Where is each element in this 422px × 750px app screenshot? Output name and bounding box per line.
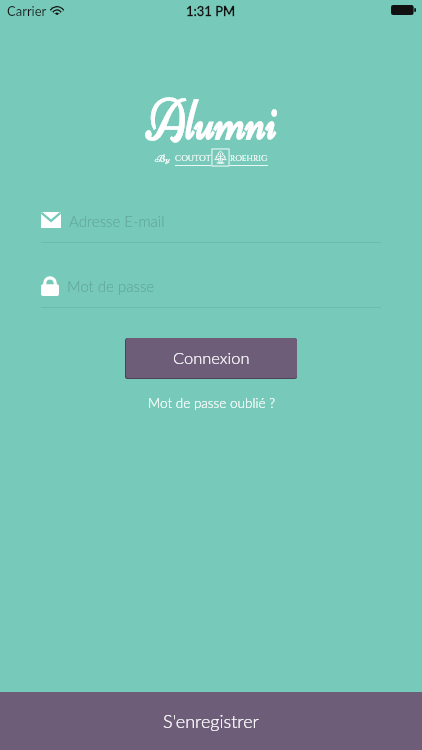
staticText: 1:31 PM	[186, 3, 236, 19]
button[interactable]: Password	[0, 267, 422, 307]
button[interactable]: S'enregistrer	[0, 692, 422, 750]
other: Email	[41, 212, 61, 228]
staticText: COUTOT	[175, 153, 211, 164]
staticText: Connexion	[173, 348, 250, 368]
other: Password	[41, 277, 59, 296]
staticText: Mot de passe oublié ?	[148, 395, 275, 411]
button[interactable]: Email	[0, 202, 422, 242]
staticText: ROEHRIG	[230, 153, 268, 164]
staticText: Adresse E-mail	[69, 212, 165, 230]
button[interactable]: Mot de passe oublié ?	[0, 391, 422, 415]
staticText: Carrier	[7, 3, 47, 19]
staticText: By	[155, 152, 170, 165]
staticText: S'enregistrer	[163, 710, 259, 732]
staticText: Alumni	[146, 84, 277, 156]
staticText: Mot de passe	[67, 277, 155, 295]
button[interactable]: Connexion	[126, 338, 297, 378]
staticText: Alumni	[146, 84, 277, 156]
